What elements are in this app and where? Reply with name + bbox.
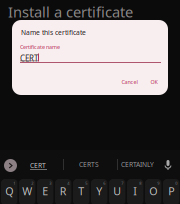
- staticText: E: [42, 184, 48, 198]
- button[interactable]: 9: [145, 179, 161, 204]
- button[interactable]: 3: [37, 179, 53, 204]
- staticText: O: [149, 184, 157, 198]
- staticText: I: [133, 184, 137, 198]
- staticText: R: [60, 184, 67, 198]
- button[interactable]: CERT: [30, 160, 47, 171]
- staticText: Q: [5, 184, 13, 198]
- button[interactable]: Voice input: [164, 160, 172, 170]
- staticText: 9: [157, 180, 159, 186]
- button[interactable]: Cancel: [116, 75, 142, 89]
- staticText: Certificate name: [20, 43, 60, 51]
- button[interactable]: CERTS: [79, 160, 99, 169]
- staticText: CERTS: [79, 160, 99, 169]
- button[interactable]: 0: [163, 179, 179, 204]
- button[interactable]: 7: [109, 179, 125, 204]
- staticText: Y: [96, 184, 102, 198]
- staticText: Install a certificate: [8, 2, 133, 21]
- button[interactable]: More suggestions: [4, 159, 17, 172]
- staticText: 4: [67, 180, 69, 186]
- staticText: OK: [150, 78, 157, 86]
- staticText: Name this certificate: [21, 28, 86, 37]
- staticText: 6: [103, 180, 105, 186]
- staticText: U: [113, 184, 121, 198]
- staticText: T: [78, 184, 84, 198]
- button[interactable]: 1: [1, 179, 17, 204]
- staticText: 7: [121, 180, 123, 186]
- button[interactable]: OK: [145, 75, 163, 89]
- staticText: 8: [139, 180, 141, 186]
- staticText: 1: [13, 180, 15, 186]
- button[interactable]: 4: [55, 179, 71, 204]
- staticText: 0: [175, 180, 177, 186]
- staticText: P: [168, 184, 174, 198]
- button[interactable]: 2: [19, 179, 35, 204]
- staticText: CERT: [30, 161, 46, 170]
- staticText: 2: [31, 180, 33, 186]
- staticText: Cancel: [121, 78, 137, 86]
- button[interactable]: 5: [73, 179, 89, 204]
- button[interactable]: 6: [91, 179, 107, 204]
- staticText: CERT: [20, 53, 38, 64]
- button[interactable]: 8: [127, 179, 143, 204]
- button[interactable]: CERTAINLY: [121, 160, 154, 169]
- staticText: 5: [85, 180, 87, 186]
- staticText: CERTAINLY: [121, 160, 154, 169]
- staticText: 3: [49, 180, 51, 186]
- staticText: W: [22, 184, 32, 198]
